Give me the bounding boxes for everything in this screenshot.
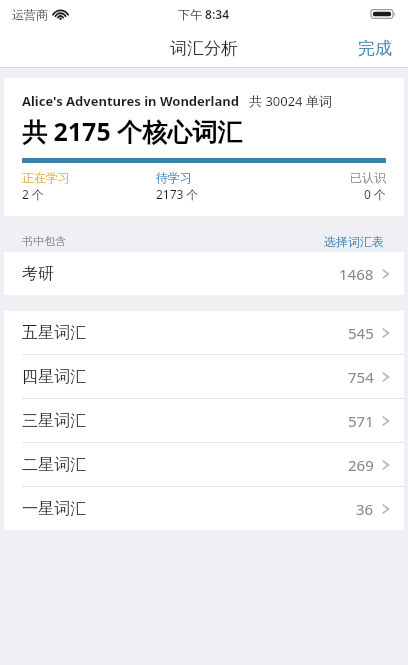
button[interactable]: 五星词汇	[4, 311, 404, 354]
button[interactable]: 考研	[4, 252, 404, 295]
staticText: 545	[348, 323, 374, 343]
staticText: 0 个	[290, 186, 386, 202]
staticText: 2 个	[22, 186, 156, 202]
staticText: 269	[348, 455, 374, 475]
staticText: Alice's Adventures in Wonderland	[22, 92, 239, 110]
staticText: 1468	[339, 264, 374, 284]
staticText: 36	[356, 499, 374, 519]
staticText: 运营商	[12, 7, 48, 22]
staticText: 选择词汇表	[324, 234, 384, 249]
button[interactable]: 四星词汇	[4, 355, 404, 398]
button[interactable]: 一星词汇	[4, 487, 404, 530]
staticText: 共 30024 单词	[249, 92, 332, 110]
staticText: 754	[348, 367, 374, 387]
staticText: 四星词汇	[22, 367, 86, 387]
button[interactable]: 二星词汇	[4, 443, 404, 486]
staticText: 待学习	[156, 170, 290, 185]
button[interactable]: 完成	[342, 28, 408, 68]
staticText: 一星词汇	[22, 499, 86, 519]
staticText: 571	[348, 411, 374, 431]
staticText: 书中包含	[22, 234, 66, 248]
button[interactable]: 选择词汇表	[322, 232, 386, 251]
staticText: 考研	[22, 264, 54, 284]
staticText: 正在学习	[22, 170, 156, 185]
staticText: 2173 个	[156, 186, 290, 202]
staticText: 完成	[358, 38, 392, 59]
staticText: 五星词汇	[22, 323, 86, 343]
staticText: 下午 8:34	[178, 6, 230, 22]
staticText: 共 2175 个核心词汇	[22, 114, 243, 148]
staticText: 词汇分析	[170, 38, 238, 59]
staticText: 三星词汇	[22, 411, 86, 431]
staticText: 已认识	[290, 170, 386, 185]
staticText: 二星词汇	[22, 455, 86, 475]
button[interactable]: 三星词汇	[4, 399, 404, 442]
